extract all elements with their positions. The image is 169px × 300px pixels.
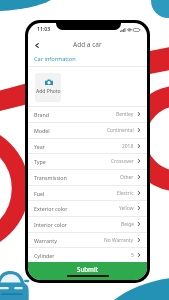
button[interactable]: Back — [28, 37, 147, 51]
staticText: Continental — [107, 127, 134, 134]
staticText: Electric — [117, 190, 134, 197]
button[interactable]: Warranty — [28, 232, 147, 248]
staticText: Car information — [34, 55, 76, 63]
button[interactable]: Model — [28, 122, 147, 138]
button[interactable]: Type — [28, 153, 147, 169]
button[interactable]: Brand — [28, 106, 147, 122]
staticText: Warranty — [34, 237, 57, 244]
button[interactable]: Cylinder — [28, 247, 147, 263]
staticText: Beige — [121, 221, 134, 228]
staticText: Year — [34, 143, 45, 150]
button[interactable]: Exterior color — [28, 200, 147, 216]
staticText: Add Photo — [36, 88, 61, 95]
staticText: Transmission — [34, 174, 67, 181]
button[interactable]: Year — [28, 138, 147, 154]
staticText: Model — [34, 127, 50, 134]
staticText: 11:03 — [37, 25, 51, 32]
staticText: Cylinder — [34, 252, 55, 259]
staticText: Exterior color — [34, 205, 68, 212]
staticText: Submit — [77, 265, 99, 273]
staticText: Interior color — [34, 221, 67, 228]
staticText: Add a car — [73, 40, 102, 49]
staticText: Crossover — [111, 158, 134, 165]
staticText: Bentley — [116, 111, 134, 118]
staticText: Fuel — [34, 190, 45, 197]
button[interactable]: Transmission — [28, 169, 147, 185]
button[interactable]: Submit — [28, 262, 147, 280]
staticText: 5 — [131, 252, 134, 259]
staticText: No Warranty — [104, 237, 134, 244]
staticText: Yellow — [119, 205, 134, 212]
staticText: Brand — [34, 111, 50, 118]
staticText: 2018 — [122, 143, 134, 150]
staticText: Other — [120, 174, 134, 181]
button[interactable]: Add Photo — [35, 73, 61, 102]
button[interactable]: Interior color — [28, 216, 147, 232]
button[interactable]: Back — [32, 40, 42, 50]
staticText: Type — [34, 158, 46, 165]
button[interactable]: Fuel — [28, 185, 147, 201]
